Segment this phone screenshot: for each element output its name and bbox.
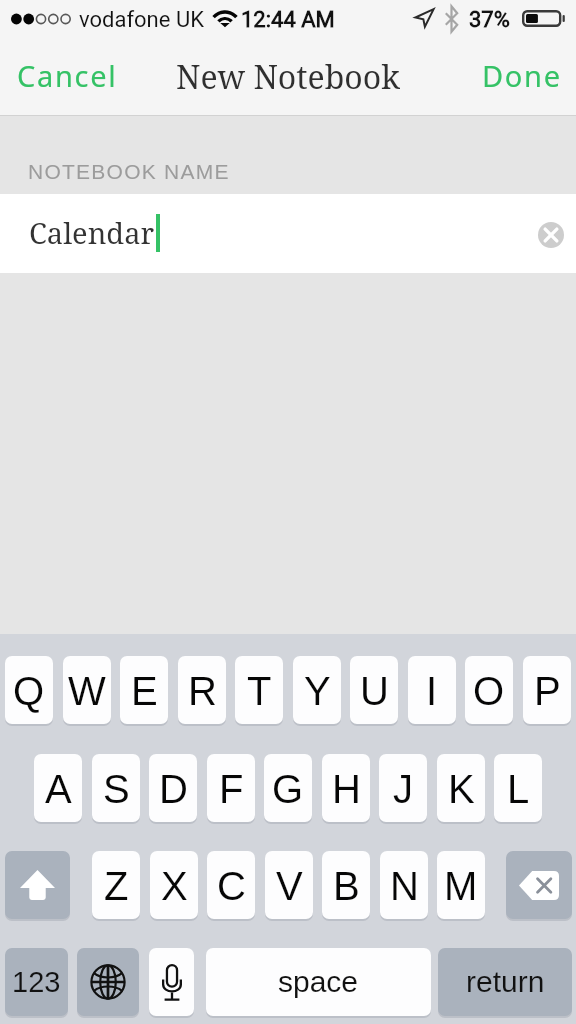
button[interactable]: M [437, 851, 485, 919]
staticText: N [390, 864, 419, 909]
button[interactable]: Shift [5, 851, 70, 919]
button[interactable]: Z [92, 851, 140, 919]
button[interactable]: return [438, 948, 572, 1016]
button[interactable]: D [149, 754, 197, 822]
button[interactable]: Numbers and symbols [5, 948, 68, 1016]
staticText: Q [13, 669, 45, 714]
button[interactable]: O [465, 656, 513, 724]
button[interactable]: Q [5, 656, 53, 724]
button[interactable]: K [437, 754, 485, 822]
staticText: C [217, 864, 246, 909]
staticText: vodafone UK [79, 7, 204, 33]
button[interactable]: I [408, 656, 456, 724]
staticText: Calendar [29, 213, 155, 252]
button[interactable]: N [380, 851, 428, 919]
staticText: F [219, 767, 244, 812]
staticText: G [272, 767, 304, 812]
staticText: return [466, 965, 545, 999]
staticText: W [68, 669, 106, 714]
staticText: A [45, 767, 72, 812]
button[interactable]: H [322, 754, 370, 822]
button[interactable]: G [264, 754, 312, 822]
button[interactable]: Cancel [0, 40, 132, 116]
staticText: T [247, 669, 272, 714]
staticText: NOTEBOOK NAME [28, 160, 230, 183]
button[interactable]: Clear text [536, 220, 566, 250]
staticText: Cancel [17, 56, 118, 95]
staticText: O [473, 669, 505, 714]
staticText: S [103, 767, 130, 812]
button[interactable]: R [178, 656, 226, 724]
staticText: H [332, 767, 361, 812]
staticText: E [131, 669, 158, 714]
staticText: U [360, 669, 389, 714]
button[interactable]: S [92, 754, 140, 822]
button[interactable]: Y [293, 656, 341, 724]
button[interactable]: A [34, 754, 82, 822]
staticText: space [278, 965, 359, 999]
button[interactable]: Change keyboard [77, 948, 139, 1016]
staticText: Done [482, 56, 562, 95]
button[interactable]: Dictation [149, 948, 194, 1016]
button[interactable]: L [494, 754, 542, 822]
button[interactable]: Backspace [506, 851, 572, 919]
staticText: D [159, 767, 188, 812]
staticText: P [534, 669, 561, 714]
staticText: 123 [12, 966, 61, 998]
button[interactable]: W [63, 656, 111, 724]
staticText: 12:44 AM [241, 7, 335, 33]
button[interactable]: B [322, 851, 370, 919]
staticText: V [276, 864, 303, 909]
staticText: X [161, 864, 188, 909]
button[interactable]: C [207, 851, 255, 919]
button[interactable]: U [350, 656, 398, 724]
button[interactable]: E [120, 656, 168, 724]
staticText: R [188, 669, 217, 714]
button[interactable]: Done [464, 40, 576, 116]
button[interactable]: T [235, 656, 283, 724]
staticText: 37% [469, 7, 510, 33]
staticText: Z [104, 864, 129, 909]
button[interactable]: space [206, 948, 431, 1016]
staticText: M [444, 864, 478, 909]
button[interactable]: X [150, 851, 198, 919]
staticText: I [426, 669, 438, 714]
staticText: New Notebook [176, 55, 401, 99]
button[interactable]: V [265, 851, 313, 919]
staticText: L [507, 767, 530, 812]
button[interactable]: P [523, 656, 571, 724]
staticText: J [393, 767, 413, 812]
staticText: B [333, 864, 360, 909]
button[interactable]: J [379, 754, 427, 822]
staticText: K [448, 767, 475, 812]
staticText: Y [304, 669, 331, 714]
button[interactable]: F [207, 754, 255, 822]
